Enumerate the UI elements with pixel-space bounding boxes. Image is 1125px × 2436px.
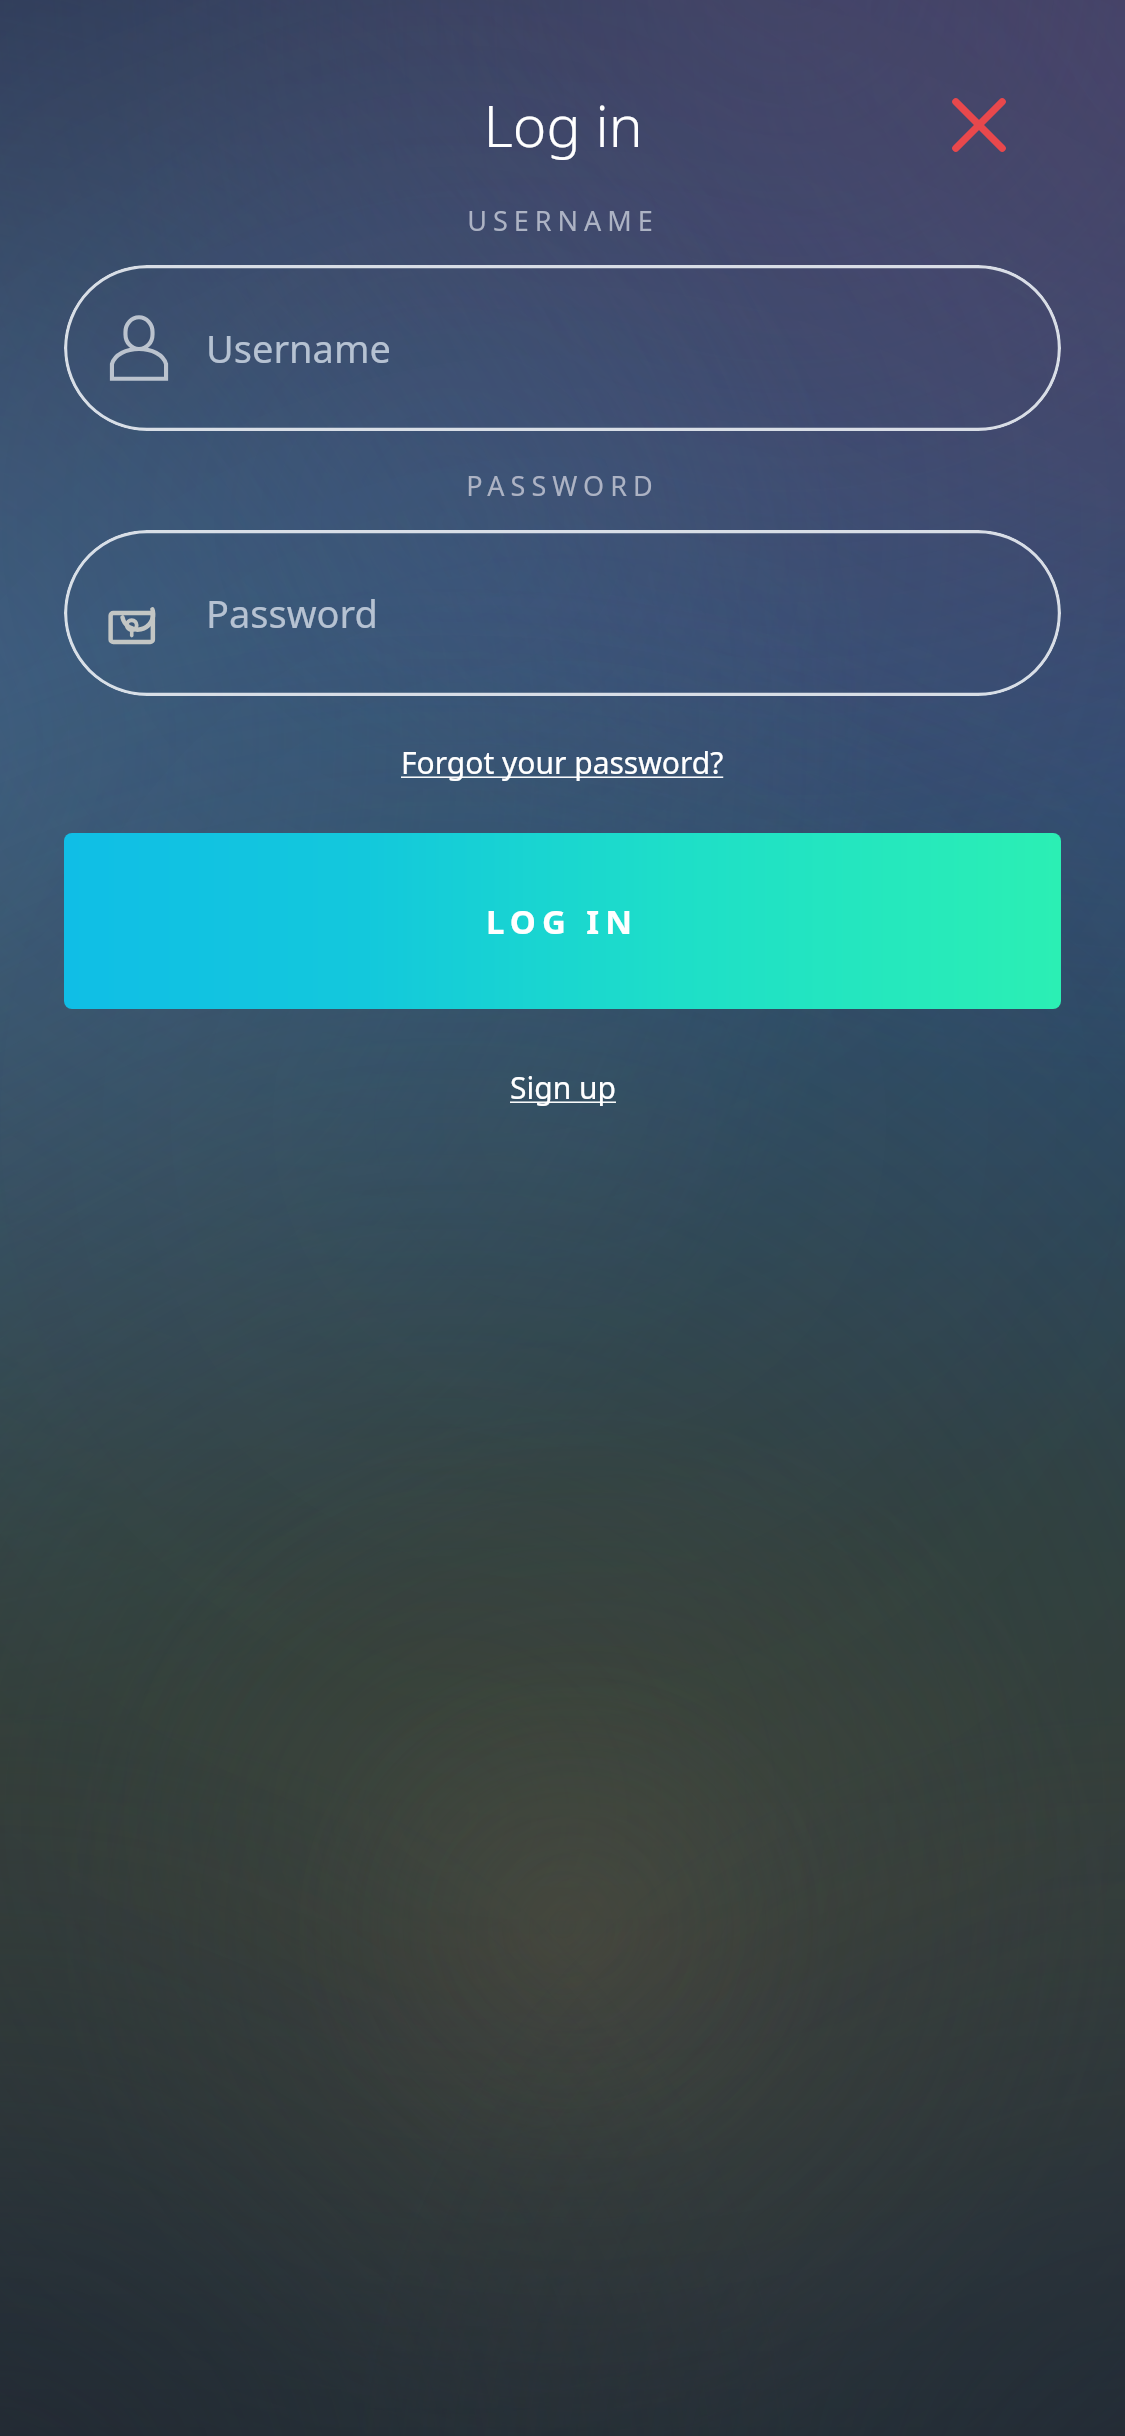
button[interactable]: Username bbox=[64, 265, 1061, 431]
staticText: Forgot your password? bbox=[401, 742, 724, 783]
staticText: USERNAME bbox=[467, 202, 659, 239]
button[interactable]: Close bbox=[931, 77, 1027, 173]
staticText: LOG IN bbox=[486, 899, 639, 944]
staticText: Log in bbox=[483, 86, 643, 164]
staticText: PASSWORD bbox=[466, 467, 659, 504]
button[interactable]: LOG IN bbox=[64, 833, 1061, 1009]
staticText: Sign up bbox=[510, 1067, 616, 1108]
button[interactable]: Forgot your password? bbox=[387, 734, 738, 791]
staticText: Username bbox=[206, 322, 391, 374]
button[interactable]: Sign up bbox=[496, 1059, 630, 1116]
staticText: Password bbox=[206, 587, 378, 639]
button[interactable]: Password bbox=[64, 530, 1061, 696]
